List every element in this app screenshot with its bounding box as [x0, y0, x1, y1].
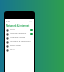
staticText: Data saver: [10, 44, 21, 47]
button[interactable]: Data saver: [5, 44, 34, 48]
staticText: Mobile network: [10, 32, 27, 35]
button[interactable]: Airplane mode: [5, 36, 34, 40]
button[interactable]: Wi-Fi: [5, 28, 34, 32]
staticText: Hotspot & tethering: [10, 40, 31, 43]
button[interactable]: Mobile network: [5, 32, 34, 36]
staticText: Airplane mode: [10, 36, 26, 39]
staticText: |||: [29, 20, 33, 23]
staticText: VPN: [10, 48, 15, 51]
staticText: Network & internet: [6, 24, 30, 27]
staticText: 9:30: [6, 20, 10, 23]
button[interactable]: Hotspot & tethering: [5, 40, 34, 44]
button[interactable]: VPN: [5, 48, 34, 52]
staticText: Wi-Fi: [10, 28, 16, 31]
